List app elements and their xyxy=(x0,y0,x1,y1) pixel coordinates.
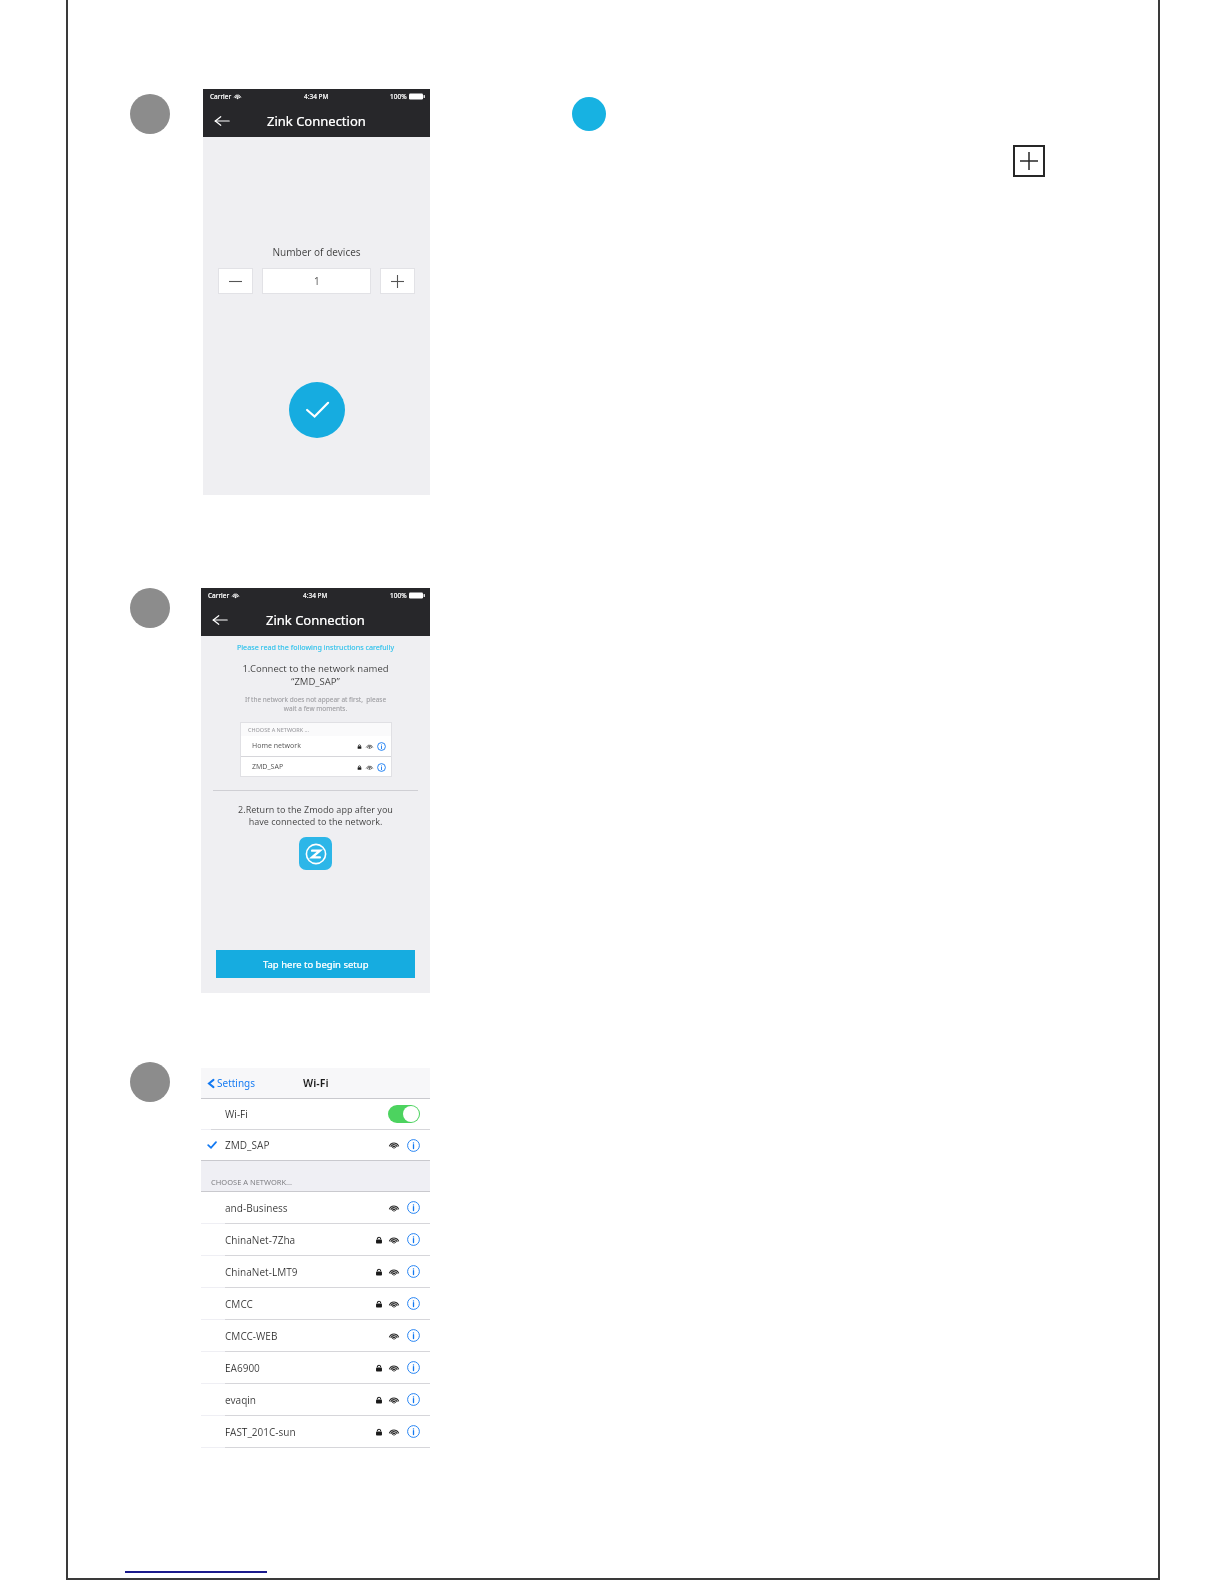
button[interactable]: Decrease xyxy=(218,268,253,294)
button[interactable]: Step marker xyxy=(130,588,170,628)
button[interactable]: Network info xyxy=(407,1201,420,1214)
staticText: Zink Connection xyxy=(267,112,366,130)
staticText: Wi-Fi xyxy=(303,1076,329,1090)
staticText: evaqin xyxy=(225,1393,257,1407)
staticText: Wi-Fi xyxy=(225,1107,248,1121)
staticText: 100% xyxy=(390,591,407,600)
button[interactable]: ZMD_SAP xyxy=(207,1130,420,1160)
button[interactable]: Step marker xyxy=(130,1062,170,1102)
staticText: 4:34 PM xyxy=(304,92,329,101)
button[interactable]: Wi-Fi xyxy=(225,1099,420,1129)
staticText: 1.Connect to the network named “ZMD_SAP” xyxy=(201,662,430,688)
staticText: CMCC xyxy=(225,1297,253,1311)
button[interactable]: Network info xyxy=(377,742,386,751)
staticText: If the network does not appear at first,… xyxy=(201,695,430,713)
button[interactable]: EA6900 xyxy=(225,1352,420,1383)
button[interactable]: and-Business xyxy=(225,1192,420,1223)
button[interactable]: Network info xyxy=(407,1233,420,1246)
staticText: CHOOSE A NETWORK ... xyxy=(248,726,309,733)
staticText: Number of devices xyxy=(203,245,430,259)
button[interactable]: ChinaNet-7Zha xyxy=(225,1224,420,1255)
button[interactable]: Network info xyxy=(407,1425,420,1438)
button[interactable]: ChinaNet-LMT9 xyxy=(225,1256,420,1287)
button[interactable]: Confirm xyxy=(289,382,345,438)
button[interactable]: evaqin xyxy=(225,1384,420,1415)
button[interactable]: 1 xyxy=(262,268,371,294)
button[interactable]: Network info xyxy=(407,1393,420,1406)
button[interactable]: Network info xyxy=(407,1361,420,1374)
button[interactable]: Step marker xyxy=(130,94,170,134)
staticText: 100% xyxy=(390,92,407,101)
staticText: Home network xyxy=(252,741,301,751)
staticText: CMCC-WEB xyxy=(225,1329,278,1343)
button[interactable]: Wi-Fi on xyxy=(388,1105,420,1123)
button[interactable]: Network info xyxy=(407,1297,420,1310)
button[interactable]: Step marker xyxy=(572,97,606,131)
button[interactable]: Network info xyxy=(407,1139,420,1152)
staticText: EA6900 xyxy=(225,1361,260,1375)
staticText: FAST_201C-sun xyxy=(225,1425,296,1439)
button[interactable]: Zmodo app icon xyxy=(299,837,332,870)
staticText: Tap here to begin setup xyxy=(263,958,369,971)
staticText: 4:34 PM xyxy=(303,591,328,600)
button[interactable]: Back xyxy=(211,110,233,132)
staticText: ChinaNet-7Zha xyxy=(225,1233,296,1247)
button[interactable]: Tap here to begin setup xyxy=(216,950,415,978)
staticText: Settings xyxy=(217,1076,256,1090)
button[interactable]: CMCC xyxy=(225,1288,420,1319)
staticText: Please read the following instructions c… xyxy=(201,642,430,652)
staticText: 2.Return to the Zmodo app after you have… xyxy=(201,803,430,827)
button[interactable]: Settings xyxy=(207,1076,256,1090)
staticText: Carrier xyxy=(208,591,230,600)
button[interactable]: Back xyxy=(209,609,231,631)
staticText: ChinaNet-LMT9 xyxy=(225,1265,298,1279)
staticText: ZMD_SAP xyxy=(225,1138,270,1152)
staticText: 1 xyxy=(314,274,320,288)
staticText: Zink Connection xyxy=(266,611,365,629)
button[interactable]: Home network xyxy=(252,736,386,756)
staticText: CHOOSE A NETWORK... xyxy=(211,1177,293,1187)
staticText: and-Business xyxy=(225,1201,288,1215)
button[interactable]: CMCC-WEB xyxy=(225,1320,420,1351)
button[interactable]: Network info xyxy=(407,1265,420,1278)
button[interactable]: Add xyxy=(1013,145,1045,177)
button[interactable]: Network info xyxy=(377,763,386,772)
button[interactable]: Increase xyxy=(380,268,415,294)
staticText: ZMD_SAP xyxy=(252,762,284,772)
button[interactable]: Network info xyxy=(407,1329,420,1342)
button[interactable]: FAST_201C-sun xyxy=(225,1416,420,1447)
button[interactable]: ZMD_SAP xyxy=(252,757,386,777)
staticText: Carrier xyxy=(210,92,232,101)
